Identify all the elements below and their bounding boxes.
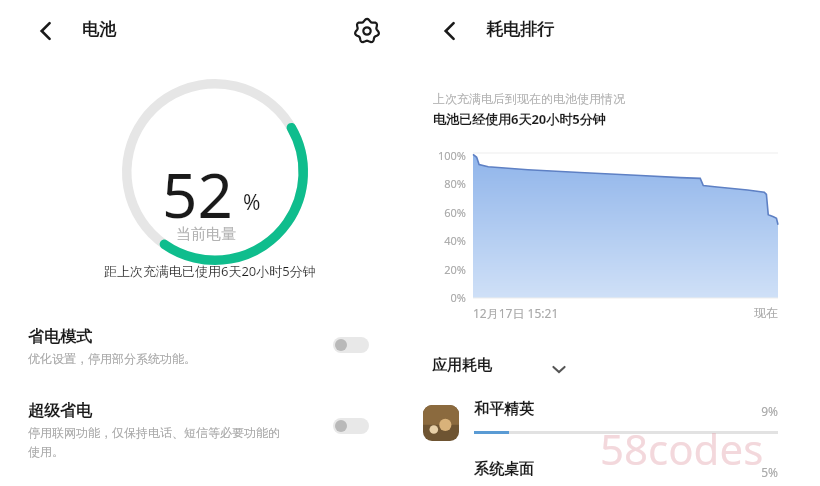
staticText: 5% [710, 464, 778, 480]
staticText: 和平精英 [474, 400, 534, 419]
staticText: 60% [422, 205, 466, 220]
button[interactable]: 超级省电 [0, 401, 410, 469]
staticText: 20% [422, 262, 466, 277]
staticText: % [243, 188, 261, 217]
button[interactable]: 系统桌面 [410, 455, 820, 486]
button[interactable]: Back [28, 13, 64, 49]
staticText: 停用联网功能，仅保持电话、短信等必要功能的 [28, 425, 280, 440]
staticText: 40% [422, 233, 466, 248]
button[interactable]: 省电模式 toggle [333, 337, 369, 353]
button[interactable]: 超级省电 toggle [333, 418, 369, 434]
staticText: 58codes [600, 420, 820, 477]
button[interactable]: Back [432, 13, 468, 49]
staticText: 距上次充满电已使用6天20小时5分钟 [104, 262, 316, 280]
staticText: 52 [162, 152, 233, 236]
button[interactable]: Settings [351, 15, 383, 47]
staticText: 12月17日 15:21 [473, 305, 559, 321]
staticText: 9% [710, 403, 778, 419]
staticText: 当前电量 [176, 225, 236, 244]
staticText: 系统桌面 [474, 460, 534, 479]
staticText: 省电模式 [28, 327, 92, 347]
staticText: 电池已经使用6天20小时5分钟 [433, 110, 606, 128]
staticText: 0% [422, 290, 466, 305]
staticText: 优化设置，停用部分系统功能。 [28, 351, 196, 366]
button[interactable]: 省电模式 [0, 327, 410, 375]
staticText: 100% [422, 148, 466, 163]
staticText: 耗电排行 [486, 19, 554, 40]
staticText: 现在 [710, 305, 778, 320]
staticText: 电池 [82, 19, 116, 40]
staticText: 使用。 [28, 444, 64, 459]
staticText: 80% [422, 176, 466, 191]
staticText: 上次充满电后到现在的电池使用情况 [433, 91, 625, 106]
staticText: 超级省电 [28, 401, 92, 421]
button[interactable]: 和平精英 [410, 392, 820, 452]
staticText: 应用耗电 [432, 356, 492, 375]
button[interactable]: 应用耗电 [424, 352, 584, 382]
